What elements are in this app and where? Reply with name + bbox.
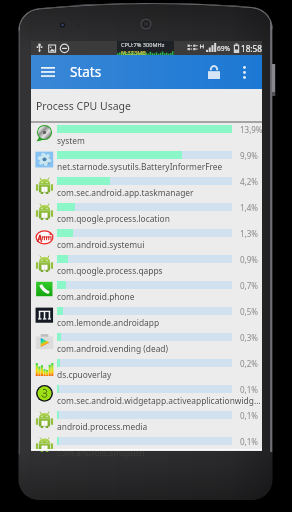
staticText: 0,9%: [240, 254, 258, 265]
button[interactable]: Open navigation drawer: [35, 55, 61, 89]
staticText: 69%: [217, 44, 231, 53]
staticText: 0,5%: [240, 306, 258, 317]
staticText: 0,3%: [240, 332, 258, 343]
button[interactable]: 0,3%: [31, 331, 262, 357]
staticText: com.qoogle.process.location: [57, 213, 170, 224]
button[interactable]: 1,4%: [31, 201, 262, 227]
staticText: M:323MB: [121, 49, 146, 55]
staticText: com.sec.android.widgetapp.activeapplicat…: [57, 395, 261, 406]
staticText: com.android.vending (dead): [57, 343, 169, 354]
staticText: 0,2%: [240, 358, 258, 369]
button[interactable]: 0,1%: [31, 435, 262, 451]
staticText: 13,9%: [240, 124, 263, 135]
button[interactable]: 0,5%: [31, 305, 262, 331]
staticText: CPU:7% 300MHz: [121, 41, 165, 49]
button[interactable]: More options: [234, 55, 254, 89]
staticText: com.android.phone: [57, 291, 135, 302]
staticText: 18:58: [241, 43, 262, 54]
button[interactable]: 0,2%: [31, 357, 262, 383]
staticText: ds.cpuoverlay: [57, 369, 112, 380]
staticText: Process CPU Usage: [36, 99, 131, 113]
button[interactable]: 0,7%: [31, 279, 262, 305]
staticText: 1,3%: [240, 228, 258, 239]
staticText: 9,9%: [240, 150, 258, 161]
button[interactable]: 0,1%: [31, 409, 262, 435]
staticText: 0,7%: [240, 280, 258, 291]
staticText: 0,1%: [240, 410, 258, 421]
staticText: 0,1%: [240, 384, 258, 395]
staticText: android.process.media: [57, 421, 148, 432]
button[interactable]: 1,3%: [31, 227, 262, 253]
button[interactable]: 13,9%: [31, 123, 262, 149]
staticText: 1,4%: [240, 202, 258, 213]
staticText: 4,2%: [240, 176, 258, 187]
staticText: com.lemonde.androidapp: [57, 317, 160, 328]
button[interactable]: 0,9%: [31, 253, 262, 279]
button[interactable]: 0,1%: [31, 383, 262, 409]
staticText: com.android.systemui: [57, 239, 145, 250]
staticText: com.qoogle.process.qapps: [57, 265, 163, 276]
staticText: 0,1%: [240, 436, 258, 447]
button[interactable]: Lock: [202, 55, 226, 89]
staticText: com.android.smspush: [57, 447, 145, 458]
staticText: system: [57, 135, 85, 146]
staticText: Stats: [70, 63, 102, 81]
button[interactable]: 9,9%: [31, 149, 262, 175]
staticText: com.sec.android.app.taskmanager: [57, 187, 194, 198]
staticText: net.starnode.sysutils.BatteryInformerFre…: [57, 161, 223, 172]
button[interactable]: 4,2%: [31, 175, 262, 201]
